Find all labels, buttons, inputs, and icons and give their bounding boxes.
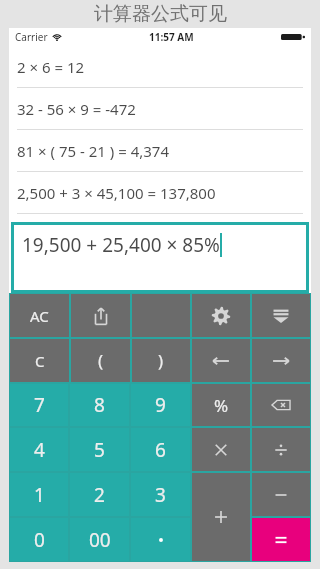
button[interactable]: Decimal point	[131, 518, 190, 561]
button[interactable]: C	[10, 339, 69, 382]
staticText: 0	[34, 527, 45, 553]
button[interactable]: 8	[70, 384, 129, 426]
staticText: 2,500 + 3 × 45,100 = 137,800	[17, 183, 216, 203]
staticText: 7	[34, 392, 45, 418]
button[interactable]: Plus	[192, 473, 250, 561]
button[interactable]: Minus	[252, 473, 310, 516]
staticText: 11:57 AM	[149, 30, 194, 44]
button[interactable]: 32 - 56 × 9 = -472	[9, 88, 311, 130]
button[interactable]: Backspace	[252, 384, 310, 426]
staticText: 19,500 + 25,400 × 85%	[22, 232, 220, 258]
button[interactable]: Divide	[252, 428, 310, 471]
button[interactable]: Multiply	[192, 428, 250, 471]
button[interactable]: 7	[10, 384, 68, 426]
button[interactable]: 4	[10, 428, 68, 471]
button[interactable]: 2 × 6 = 12	[9, 46, 311, 88]
button[interactable]: AC	[10, 294, 69, 337]
button[interactable]: 2	[70, 473, 129, 516]
staticText: 计算器公式可见	[94, 2, 227, 26]
button[interactable]: Cursor right	[252, 339, 310, 382]
button[interactable]: 00	[70, 518, 129, 561]
button[interactable]: )	[132, 339, 190, 382]
button[interactable]: 5	[70, 428, 129, 471]
button[interactable]: 1	[10, 473, 68, 516]
staticText: C	[35, 351, 45, 371]
button[interactable]: Equals	[252, 518, 310, 561]
button[interactable]: 81 × ( 75 - 21 ) = 4,374	[9, 130, 311, 172]
staticText: 1	[34, 482, 45, 508]
button[interactable]: 0	[10, 518, 68, 561]
button[interactable]: Hide keyboard	[252, 294, 310, 337]
staticText: 2	[94, 482, 105, 508]
staticText: 5	[94, 437, 105, 463]
button[interactable]: 6	[131, 428, 190, 471]
staticText: 00	[89, 527, 111, 553]
button[interactable]: Cursor left	[192, 339, 250, 382]
button[interactable]: 9	[131, 384, 190, 426]
button[interactable]: (	[71, 339, 130, 382]
button[interactable]: %	[192, 384, 250, 426]
staticText: %	[214, 394, 229, 417]
staticText: 32 - 56 × 9 = -472	[17, 99, 136, 119]
button[interactable]: 3	[131, 473, 190, 516]
staticText: 8	[94, 392, 105, 418]
staticText: 81 × ( 75 - 21 ) = 4,374	[17, 141, 170, 161]
button[interactable]: 2,500 + 3 × 45,100 = 137,800	[9, 172, 311, 214]
staticText: 3	[155, 482, 166, 508]
button[interactable]: 19,500 + 25,400 × 85%	[14, 225, 306, 290]
staticText: 4	[34, 437, 45, 463]
staticText: (	[98, 349, 104, 372]
staticText: )	[158, 349, 164, 372]
staticText: AC	[30, 306, 49, 326]
staticText: 2 × 6 = 12	[17, 57, 85, 77]
button[interactable]: Settings	[192, 294, 250, 337]
button[interactable]: Share	[71, 294, 130, 337]
staticText: 6	[155, 437, 166, 463]
staticText: 9	[155, 392, 166, 418]
staticText: Carrier	[15, 30, 48, 44]
